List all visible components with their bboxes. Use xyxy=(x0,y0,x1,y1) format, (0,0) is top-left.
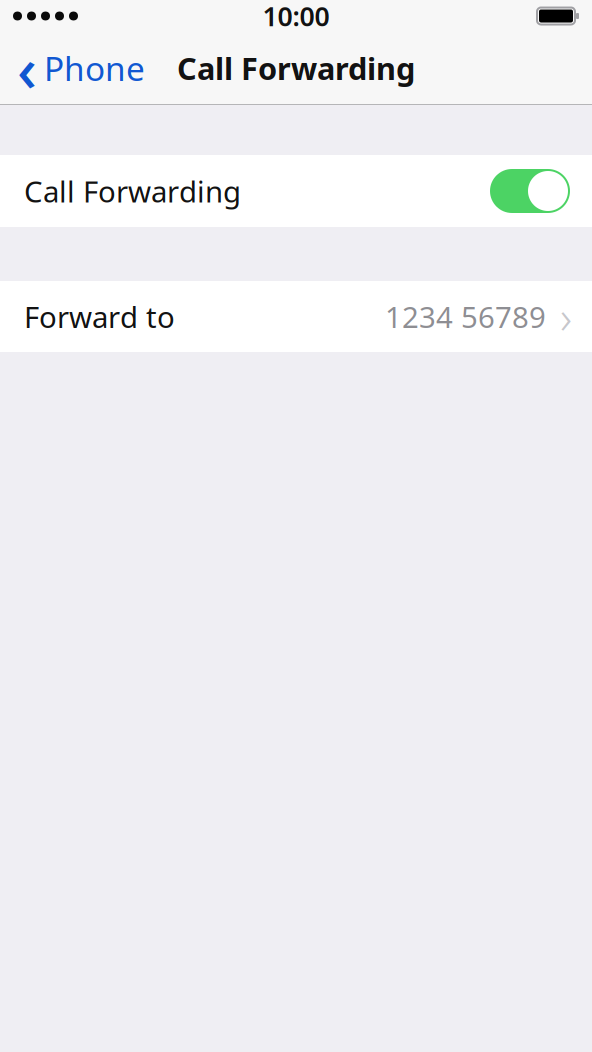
button[interactable]: ‹ xyxy=(0,32,159,104)
staticText: › xyxy=(560,286,572,347)
button[interactable]: Call Forwarding xyxy=(0,155,592,227)
staticText: ‹ xyxy=(17,27,37,109)
staticText: Call Forwarding xyxy=(177,48,415,88)
staticText: Call Forwarding xyxy=(24,171,241,210)
staticText: Forward to xyxy=(24,297,175,336)
staticText: Phone xyxy=(44,46,145,90)
button[interactable]: Forward to xyxy=(0,281,592,352)
staticText: 1234 56789 xyxy=(385,297,546,336)
staticText: 10:00 xyxy=(262,0,329,34)
